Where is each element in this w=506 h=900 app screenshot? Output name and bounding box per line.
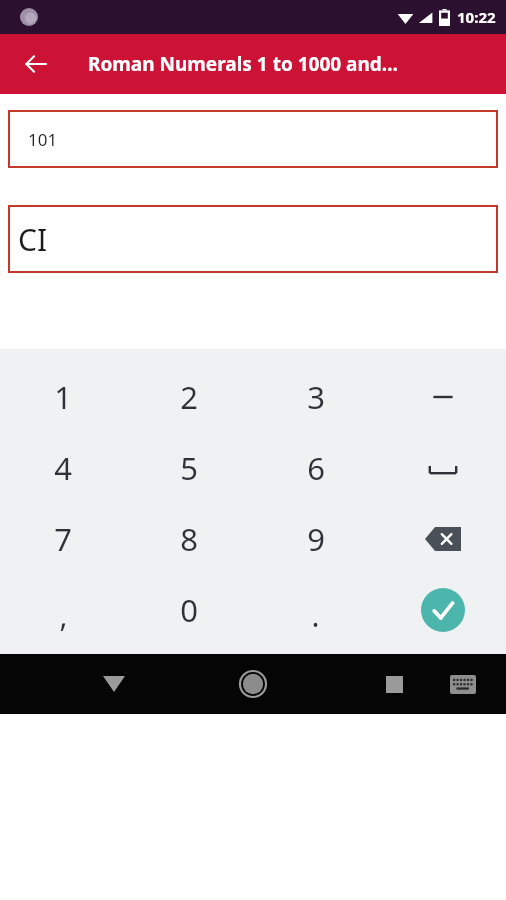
staticText: 8 <box>180 518 198 560</box>
staticText: 5 <box>180 447 198 489</box>
button[interactable]: 8 <box>126 503 252 574</box>
staticText: , <box>59 595 68 636</box>
button[interactable]: 9 <box>252 503 379 574</box>
staticText: 1 <box>54 376 72 418</box>
staticText: . <box>311 595 320 636</box>
button[interactable]: 2 <box>126 361 252 432</box>
staticText: 4 <box>54 447 72 489</box>
staticText: 0 <box>180 589 198 631</box>
button[interactable]: . <box>252 574 379 645</box>
button[interactable]: Space <box>379 432 506 503</box>
button[interactable]: Hide keyboard <box>92 662 136 706</box>
button[interactable]: , <box>0 574 126 645</box>
button[interactable]: 101 <box>8 110 498 168</box>
staticText: 10:22 <box>457 7 496 27</box>
button[interactable]: Backspace <box>379 503 506 574</box>
button[interactable]: Home <box>229 660 277 708</box>
button[interactable]: 0 <box>126 574 252 645</box>
staticText: 101 <box>28 128 58 151</box>
button[interactable]: 1 <box>0 361 126 432</box>
button[interactable]: 5 <box>126 432 252 503</box>
staticText: CI <box>18 219 48 260</box>
staticText: 2 <box>180 376 198 418</box>
button[interactable]: Minus <box>379 361 506 432</box>
staticText: 6 <box>307 447 325 489</box>
button[interactable]: Switch keyboard <box>442 663 484 705</box>
button[interactable]: 3 <box>252 361 379 432</box>
button[interactable]: 6 <box>252 432 379 503</box>
staticText: 7 <box>54 518 72 560</box>
button[interactable]: Enter <box>379 574 506 645</box>
button[interactable]: Back <box>12 40 60 88</box>
staticText: 3 <box>307 376 325 418</box>
button[interactable]: 4 <box>0 432 126 503</box>
button[interactable]: 7 <box>0 503 126 574</box>
staticText: 9 <box>307 518 325 560</box>
button[interactable]: Recent apps <box>372 662 416 706</box>
button[interactable]: CI <box>8 205 498 273</box>
staticText: Roman Numerals 1 to 1000 and… <box>88 51 399 77</box>
